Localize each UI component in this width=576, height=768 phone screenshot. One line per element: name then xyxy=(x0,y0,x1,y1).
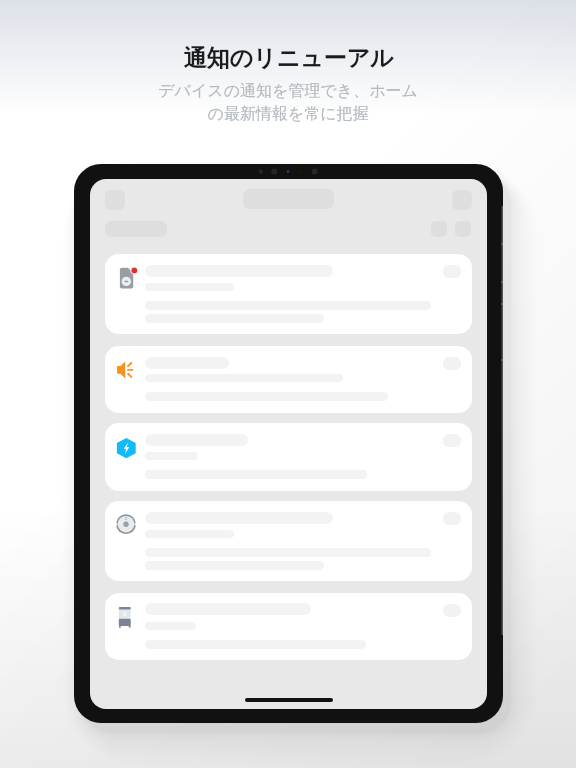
button[interactable] xyxy=(105,346,472,413)
button[interactable] xyxy=(105,593,472,660)
button[interactable] xyxy=(105,254,472,334)
staticText: デバイスの通知を管理でき、ホーム の最新情報を常に把握 xyxy=(158,81,418,124)
button[interactable] xyxy=(105,501,472,581)
staticText: 通知のリニューアル xyxy=(183,44,394,73)
button[interactable] xyxy=(105,423,472,491)
